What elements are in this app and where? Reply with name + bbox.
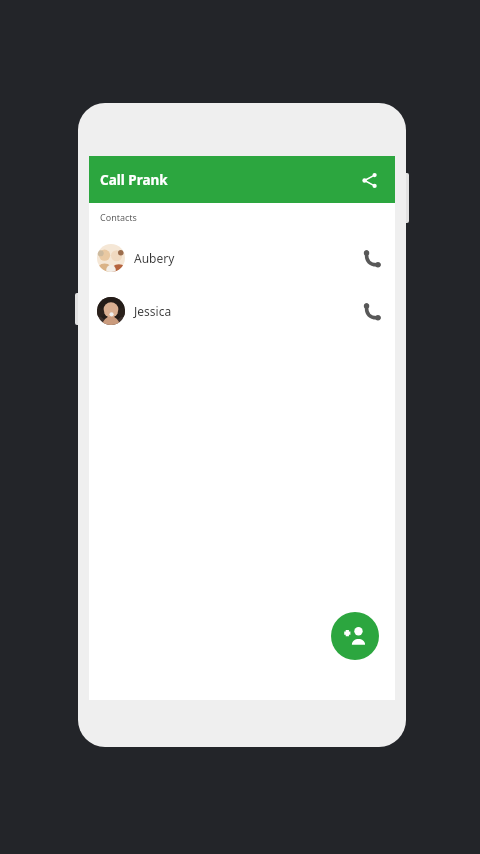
button[interactable]: Call Jessica <box>355 294 389 328</box>
button[interactable]: Aubery <box>89 231 395 284</box>
staticText: Contacts <box>100 211 137 223</box>
button[interactable]: Share <box>352 163 386 197</box>
button[interactable]: Call Aubery <box>355 241 389 275</box>
staticText: Call Prank <box>100 171 168 189</box>
staticText: Aubery <box>134 250 175 266</box>
button[interactable]: Add contact <box>331 612 379 660</box>
button[interactable]: Jessica <box>89 284 395 337</box>
staticText: Jessica <box>134 303 172 319</box>
